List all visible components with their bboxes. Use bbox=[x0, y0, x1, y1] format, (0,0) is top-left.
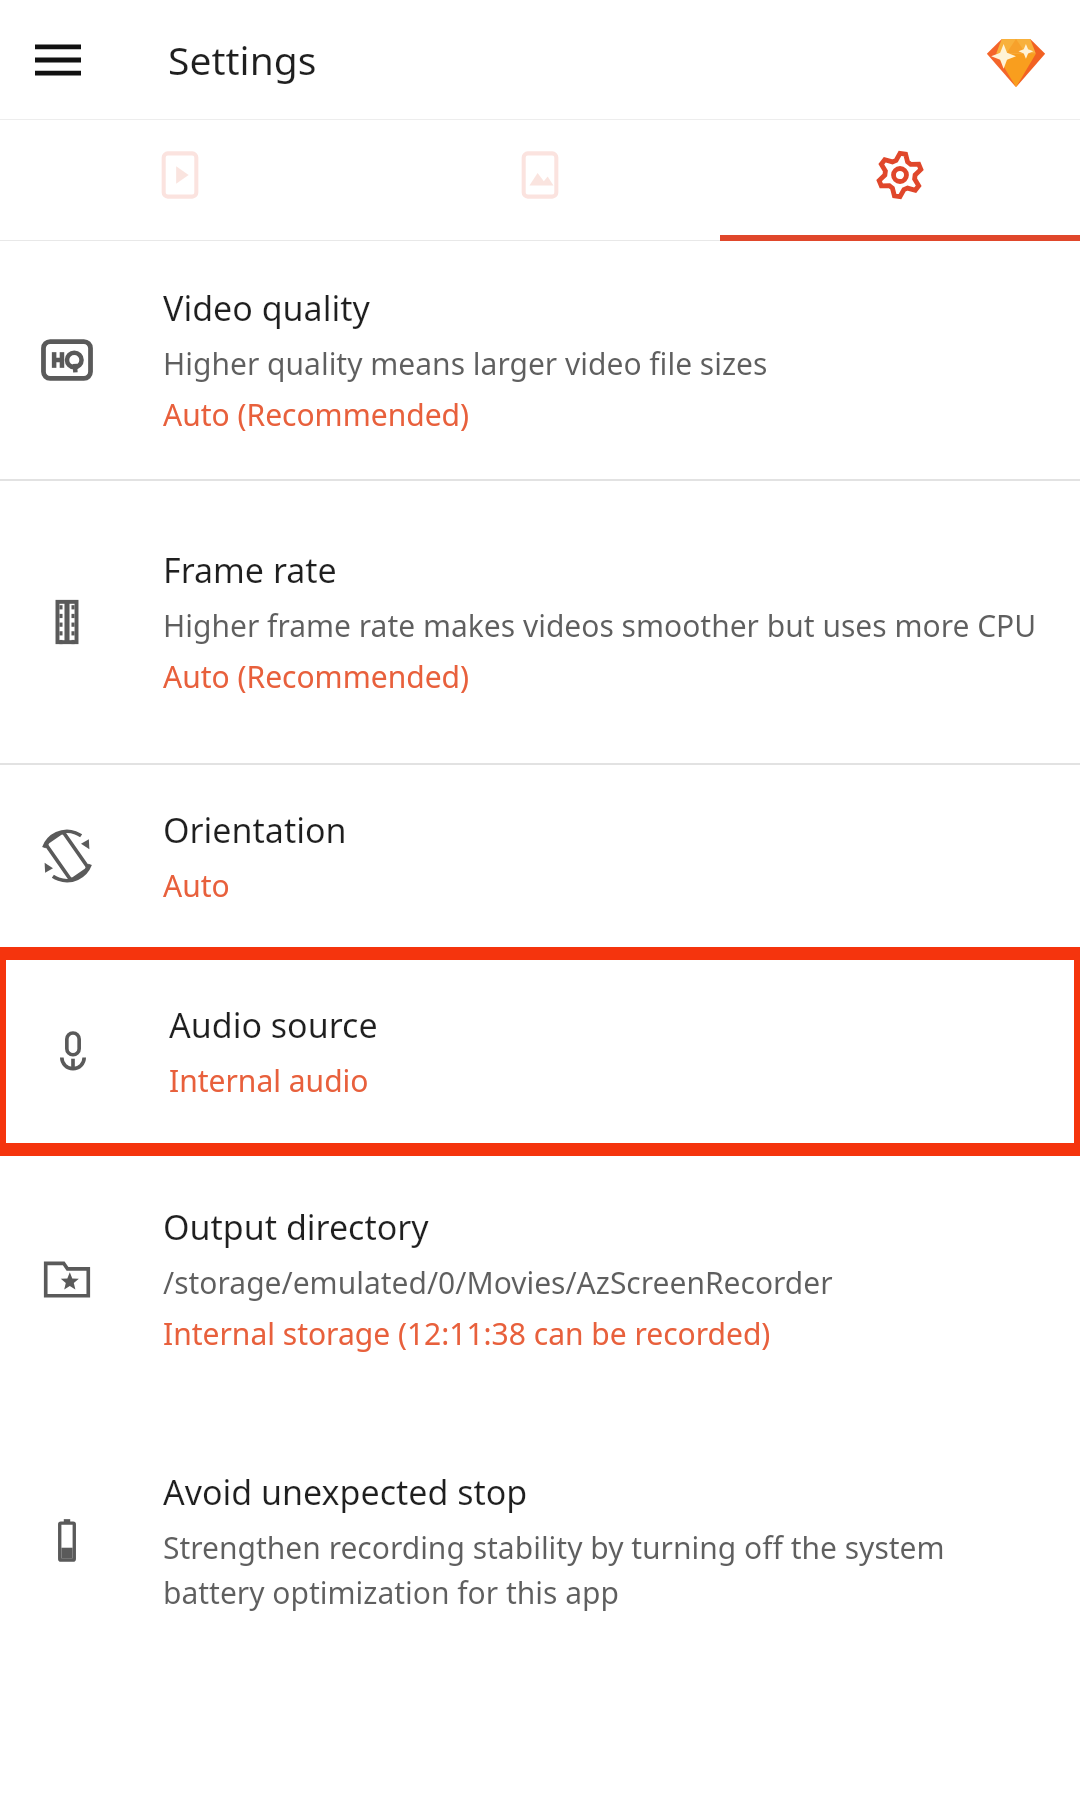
staticText: Internal audio bbox=[169, 1060, 369, 1101]
staticText: Output directory bbox=[163, 1204, 429, 1250]
button[interactable]: Open navigation menu bbox=[20, 22, 96, 98]
button[interactable]: Video quality bbox=[0, 241, 1080, 479]
staticText: Frame rate bbox=[163, 547, 337, 593]
button[interactable]: Videos bbox=[0, 120, 360, 241]
other: Audio source bbox=[42, 1021, 104, 1083]
staticText: Auto (Recommended) bbox=[163, 656, 469, 697]
button[interactable]: Images bbox=[360, 120, 720, 241]
staticText: Higher frame rate makes videos smoother … bbox=[163, 605, 1037, 646]
other: Video quality bbox=[36, 329, 98, 391]
staticText: Audio source bbox=[169, 1002, 378, 1048]
button[interactable]: Orientation bbox=[0, 765, 1080, 947]
staticText: Auto (Recommended) bbox=[163, 394, 469, 435]
other: Orientation bbox=[36, 825, 98, 887]
button[interactable]: Output directory bbox=[0, 1156, 1080, 1401]
staticText: Orientation bbox=[163, 807, 347, 853]
button[interactable]: Premium bbox=[974, 18, 1058, 102]
staticText: Higher quality means larger video file s… bbox=[163, 343, 768, 384]
button[interactable]: Frame rate bbox=[0, 481, 1080, 763]
staticText: Settings bbox=[168, 33, 317, 86]
staticText: Strengthen recording stability by turnin… bbox=[163, 1527, 1044, 1613]
button[interactable]: Audio source bbox=[6, 960, 1074, 1143]
staticText: /storage/emulated/0/Movies/AzScreenRecor… bbox=[163, 1262, 833, 1303]
other: Frame rate bbox=[36, 591, 98, 653]
other: Avoid unexpected stop bbox=[36, 1510, 98, 1572]
staticText: Auto bbox=[163, 865, 230, 906]
staticText: Internal storage (12:11:38 can be record… bbox=[163, 1313, 771, 1354]
staticText: Avoid unexpected stop bbox=[163, 1469, 528, 1515]
staticText: Video quality bbox=[163, 285, 370, 331]
button[interactable]: Settings bbox=[720, 120, 1080, 241]
other: Output directory bbox=[36, 1248, 98, 1310]
button[interactable]: Avoid unexpected stop bbox=[0, 1401, 1080, 1681]
